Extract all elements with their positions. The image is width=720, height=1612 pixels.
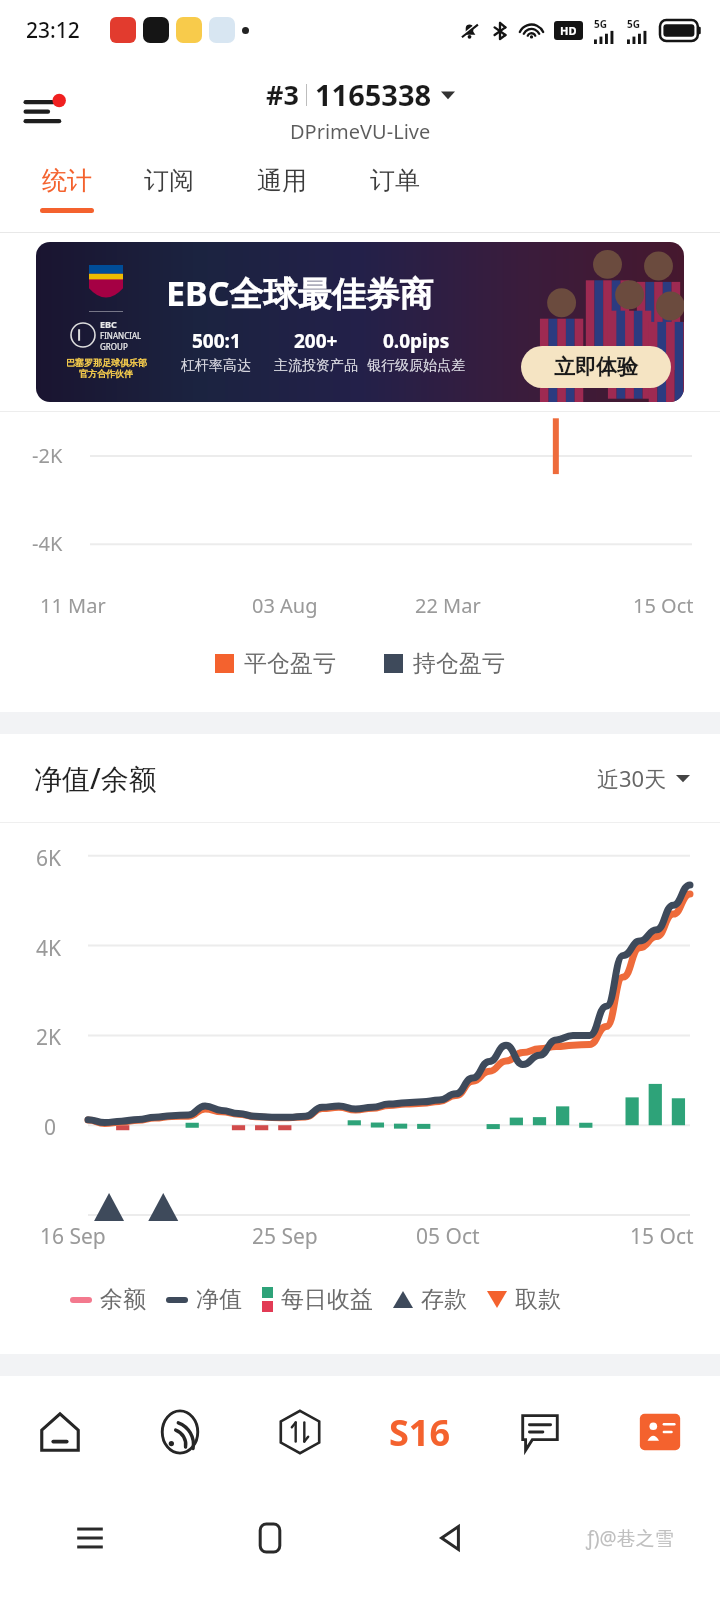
staticText: 23:12 [26, 16, 80, 45]
staticText: 取款 [515, 1285, 561, 1314]
staticText: 统计 [42, 165, 92, 196]
staticText: EBC [100, 318, 117, 330]
staticText: 存款 [421, 1285, 467, 1314]
staticText: 持仓盈亏 [413, 649, 505, 678]
staticText: 5G [594, 17, 607, 31]
staticText: 6K [36, 844, 62, 873]
staticText: EBC全球最佳券商 [166, 270, 434, 316]
button[interactable]: 统计 [22, 160, 112, 232]
staticText: 杠杆率高达 [181, 357, 251, 375]
staticText: 0.0pips [383, 328, 450, 354]
staticText: 净值 [196, 1285, 242, 1314]
staticText: 官方合作伙伴 [79, 368, 133, 379]
staticText: 15 Oct [630, 1222, 694, 1251]
button[interactable]: 立即体验 [521, 346, 671, 388]
other: Home [256, 1524, 284, 1552]
button[interactable]: Messages [480, 1376, 600, 1488]
staticText: DPrimeVU-Live [290, 118, 431, 145]
staticText: 近30天 [597, 763, 667, 793]
staticText: 银行级原始点差 [367, 357, 465, 375]
staticText: 4K [36, 934, 62, 963]
staticText: 巴塞罗那足球俱乐部 [66, 357, 147, 368]
staticText: -4K [32, 530, 63, 557]
staticText: 200+ [294, 328, 338, 354]
staticText: #3 [266, 76, 299, 113]
button[interactable]: 近30天 [597, 763, 690, 793]
staticText: GROUP [100, 341, 128, 352]
staticText: 05 Oct [416, 1222, 480, 1251]
staticText: 5G [627, 17, 640, 31]
staticText: HD [560, 23, 577, 38]
staticText: 每日收益 [281, 1285, 373, 1314]
staticText: 15 Oct [633, 592, 694, 619]
button[interactable]: S16 [360, 1376, 480, 1488]
staticText: 03 Aug [252, 592, 318, 619]
staticText: 立即体验 [554, 354, 638, 380]
button[interactable]: 订阅 [112, 160, 225, 232]
button[interactable]: 订单 [338, 160, 451, 232]
button[interactable]: EBC [36, 242, 684, 402]
staticText: 净值/余额 [34, 759, 157, 797]
staticText: 订单 [370, 165, 420, 196]
staticText: 2K [36, 1023, 62, 1052]
staticText: 1165338 [315, 75, 432, 114]
staticText: 余额 [100, 1285, 146, 1314]
staticText: 0 [44, 1113, 57, 1142]
staticText: 25 Sep [252, 1222, 318, 1251]
staticText: 500:1 [192, 328, 241, 354]
staticText: S16 [389, 1408, 451, 1457]
button[interactable]: Copy Trade [240, 1376, 360, 1488]
staticText: FINANCIAL [100, 330, 142, 341]
staticText: 订阅 [144, 165, 194, 196]
staticText: 平仓盈亏 [244, 649, 336, 678]
other: Recents [74, 1522, 106, 1554]
button[interactable]: Menu [20, 82, 76, 138]
staticText: 16 Sep [40, 1222, 106, 1251]
staticText: 主流投资产品 [274, 357, 358, 375]
button[interactable]: 通用 [225, 160, 338, 232]
button[interactable]: Signals [120, 1376, 240, 1488]
button[interactable]: Home [0, 1376, 120, 1488]
button[interactable]: Profile [600, 1376, 720, 1488]
staticText: 通用 [257, 165, 307, 196]
other: Back [435, 1523, 465, 1553]
staticText: 22 Mar [415, 592, 481, 619]
staticText: 11 Mar [40, 592, 106, 619]
staticText: ƒ)@巷之雪 [586, 1525, 674, 1551]
staticText: -2K [32, 442, 63, 469]
